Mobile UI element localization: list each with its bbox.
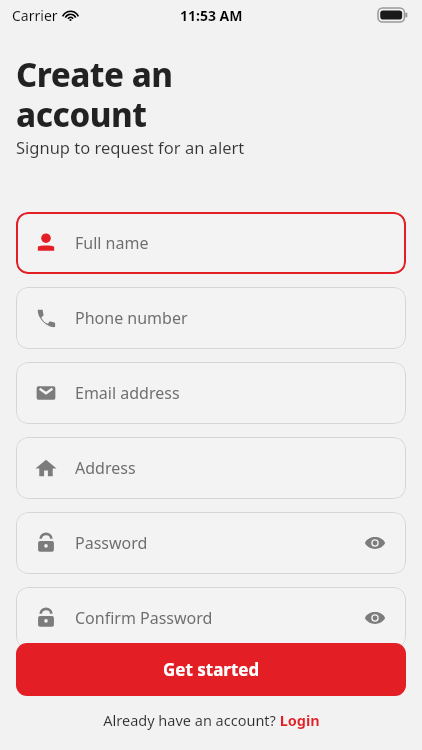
button[interactable]: Phone number — [16, 287, 406, 349]
button[interactable]: Confirm Password — [16, 587, 406, 649]
button[interactable]: Address — [16, 437, 406, 499]
staticText: Signup to request for an alert — [16, 136, 245, 158]
staticText: Carrier — [12, 6, 58, 25]
staticText: Create an account — [16, 52, 173, 137]
staticText: Already have an account? Login — [103, 710, 320, 730]
button[interactable]: Show password — [360, 603, 390, 633]
button[interactable]: Password — [16, 512, 406, 574]
staticText: Phone number — [75, 307, 188, 329]
staticText: Full name — [75, 232, 149, 254]
button[interactable]: Show password — [360, 528, 390, 558]
staticText: Email address — [75, 382, 180, 404]
button[interactable]: Email address — [16, 362, 406, 424]
staticText: Confirm Password — [75, 607, 213, 629]
button[interactable]: Get started — [16, 643, 406, 696]
button[interactable]: Already have an account? Login — [97, 707, 326, 733]
staticText: Get started — [163, 658, 260, 681]
staticText: Address — [75, 457, 136, 479]
staticText: Password — [75, 532, 148, 554]
staticText: 11:53 AM — [180, 6, 243, 25]
button[interactable]: Full name — [16, 212, 406, 274]
